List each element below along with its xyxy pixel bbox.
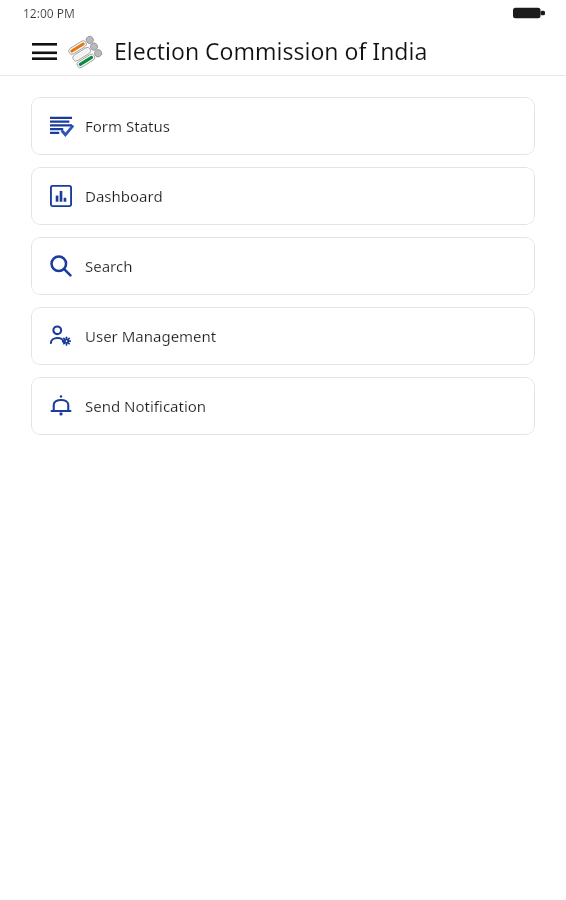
staticText: Send Notification	[85, 396, 207, 416]
button[interactable]: Open navigation menu	[26, 33, 62, 69]
staticText: Search	[85, 256, 133, 276]
button[interactable]: Form Status	[31, 97, 535, 155]
button[interactable]: User Management	[31, 307, 535, 365]
staticText: User Management	[85, 326, 217, 346]
staticText: Dashboard	[85, 186, 163, 206]
button[interactable]: Send Notification	[31, 377, 535, 435]
button[interactable]: Search	[31, 237, 535, 295]
staticText: Election Commission of India	[114, 35, 428, 66]
staticText: 12:00 PM	[23, 5, 75, 21]
button[interactable]: Dashboard	[31, 167, 535, 225]
staticText: Form Status	[85, 116, 170, 136]
